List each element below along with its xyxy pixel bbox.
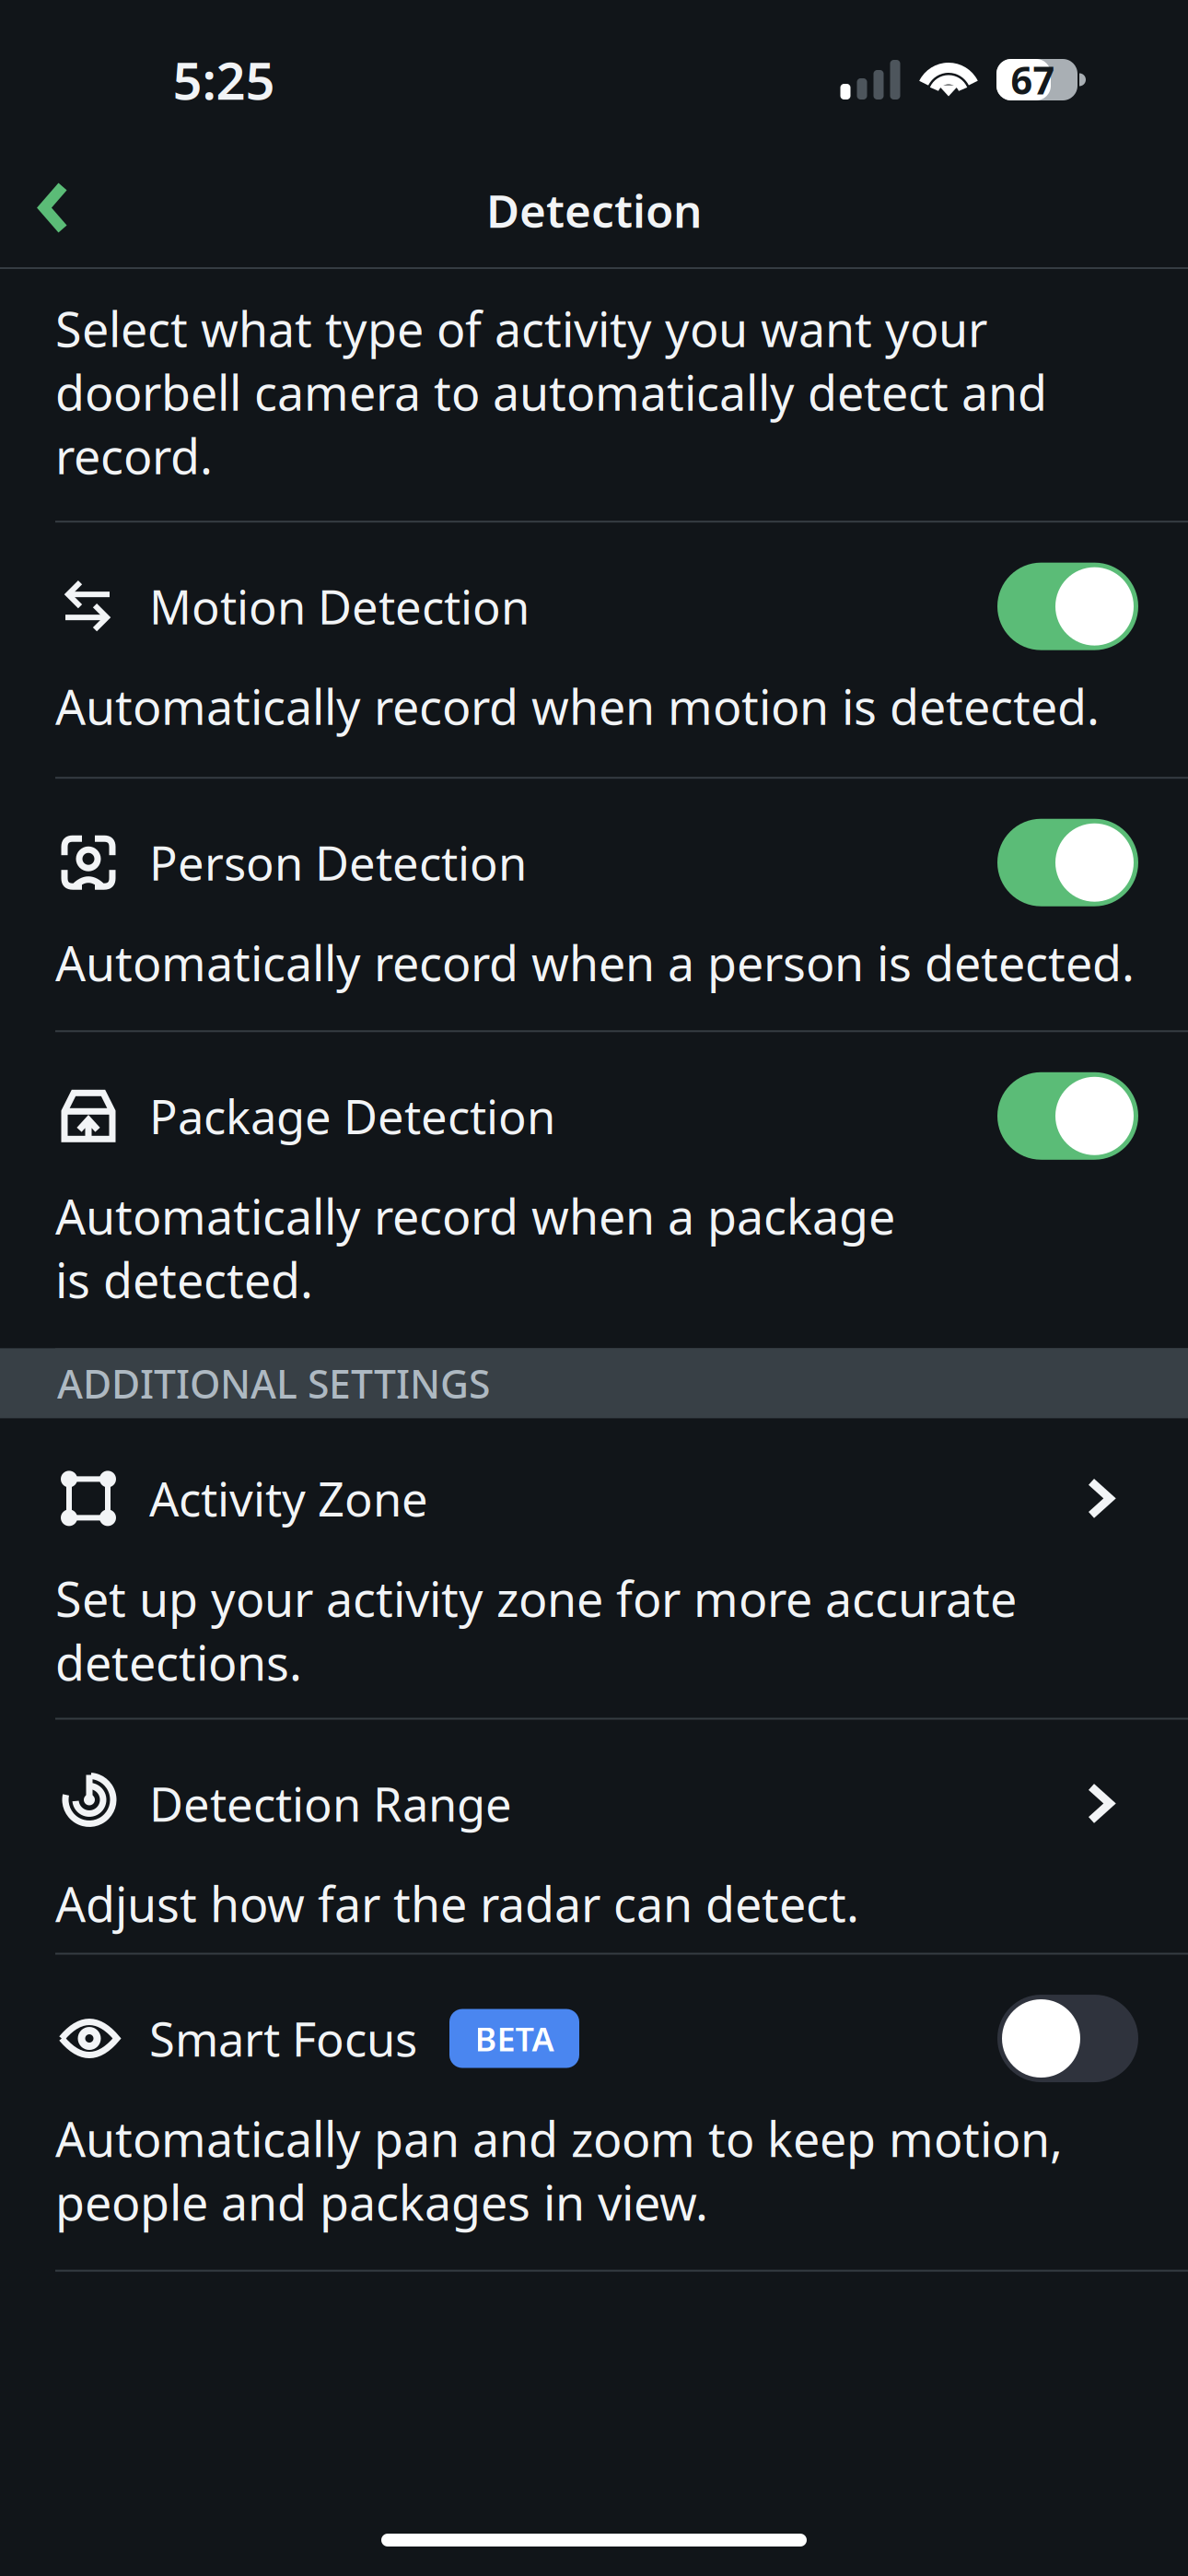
staticText: Package Detection — [149, 1085, 555, 1147]
staticText: Adjust how far the radar can detect. — [55, 1872, 859, 1935]
button[interactable]: Smart Focus — [0, 1955, 1188, 2084]
staticText: Motion Detection — [149, 575, 530, 637]
staticText: Automatically pan and zoom to keep motio… — [55, 2107, 1063, 2234]
staticText: Automatically record when motion is dete… — [55, 675, 1100, 738]
staticText: Automatically record when a person is de… — [55, 931, 1135, 994]
staticText: Activity Zone — [149, 1467, 428, 1529]
staticText: Smart Focus — [149, 2007, 417, 2069]
button[interactable]: Package Detection — [0, 1032, 1188, 1162]
button[interactable]: Person Detection — [0, 779, 1188, 909]
button[interactable]: Back — [0, 145, 100, 256]
button[interactable]: Motion Detection — [0, 523, 1188, 652]
staticText: Automatically record when a package is d… — [55, 1184, 895, 1311]
button[interactable]: Activity Zone — [0, 1418, 1188, 1544]
staticText: Set up your activity zone for more accur… — [55, 1567, 1017, 1694]
staticText: Select what type of activity you want yo… — [55, 297, 1047, 488]
staticText: ADDITIONAL SETTINGS — [57, 1357, 490, 1409]
button[interactable]: Detection Range — [0, 1720, 1188, 1850]
staticText: Detection Range — [149, 1772, 512, 1834]
staticText: 5:25 — [173, 45, 275, 114]
staticText: 67 — [1011, 54, 1055, 105]
staticText: BETA — [475, 2016, 554, 2060]
staticText: Detection — [486, 180, 702, 240]
staticText: Person Detection — [149, 832, 527, 894]
